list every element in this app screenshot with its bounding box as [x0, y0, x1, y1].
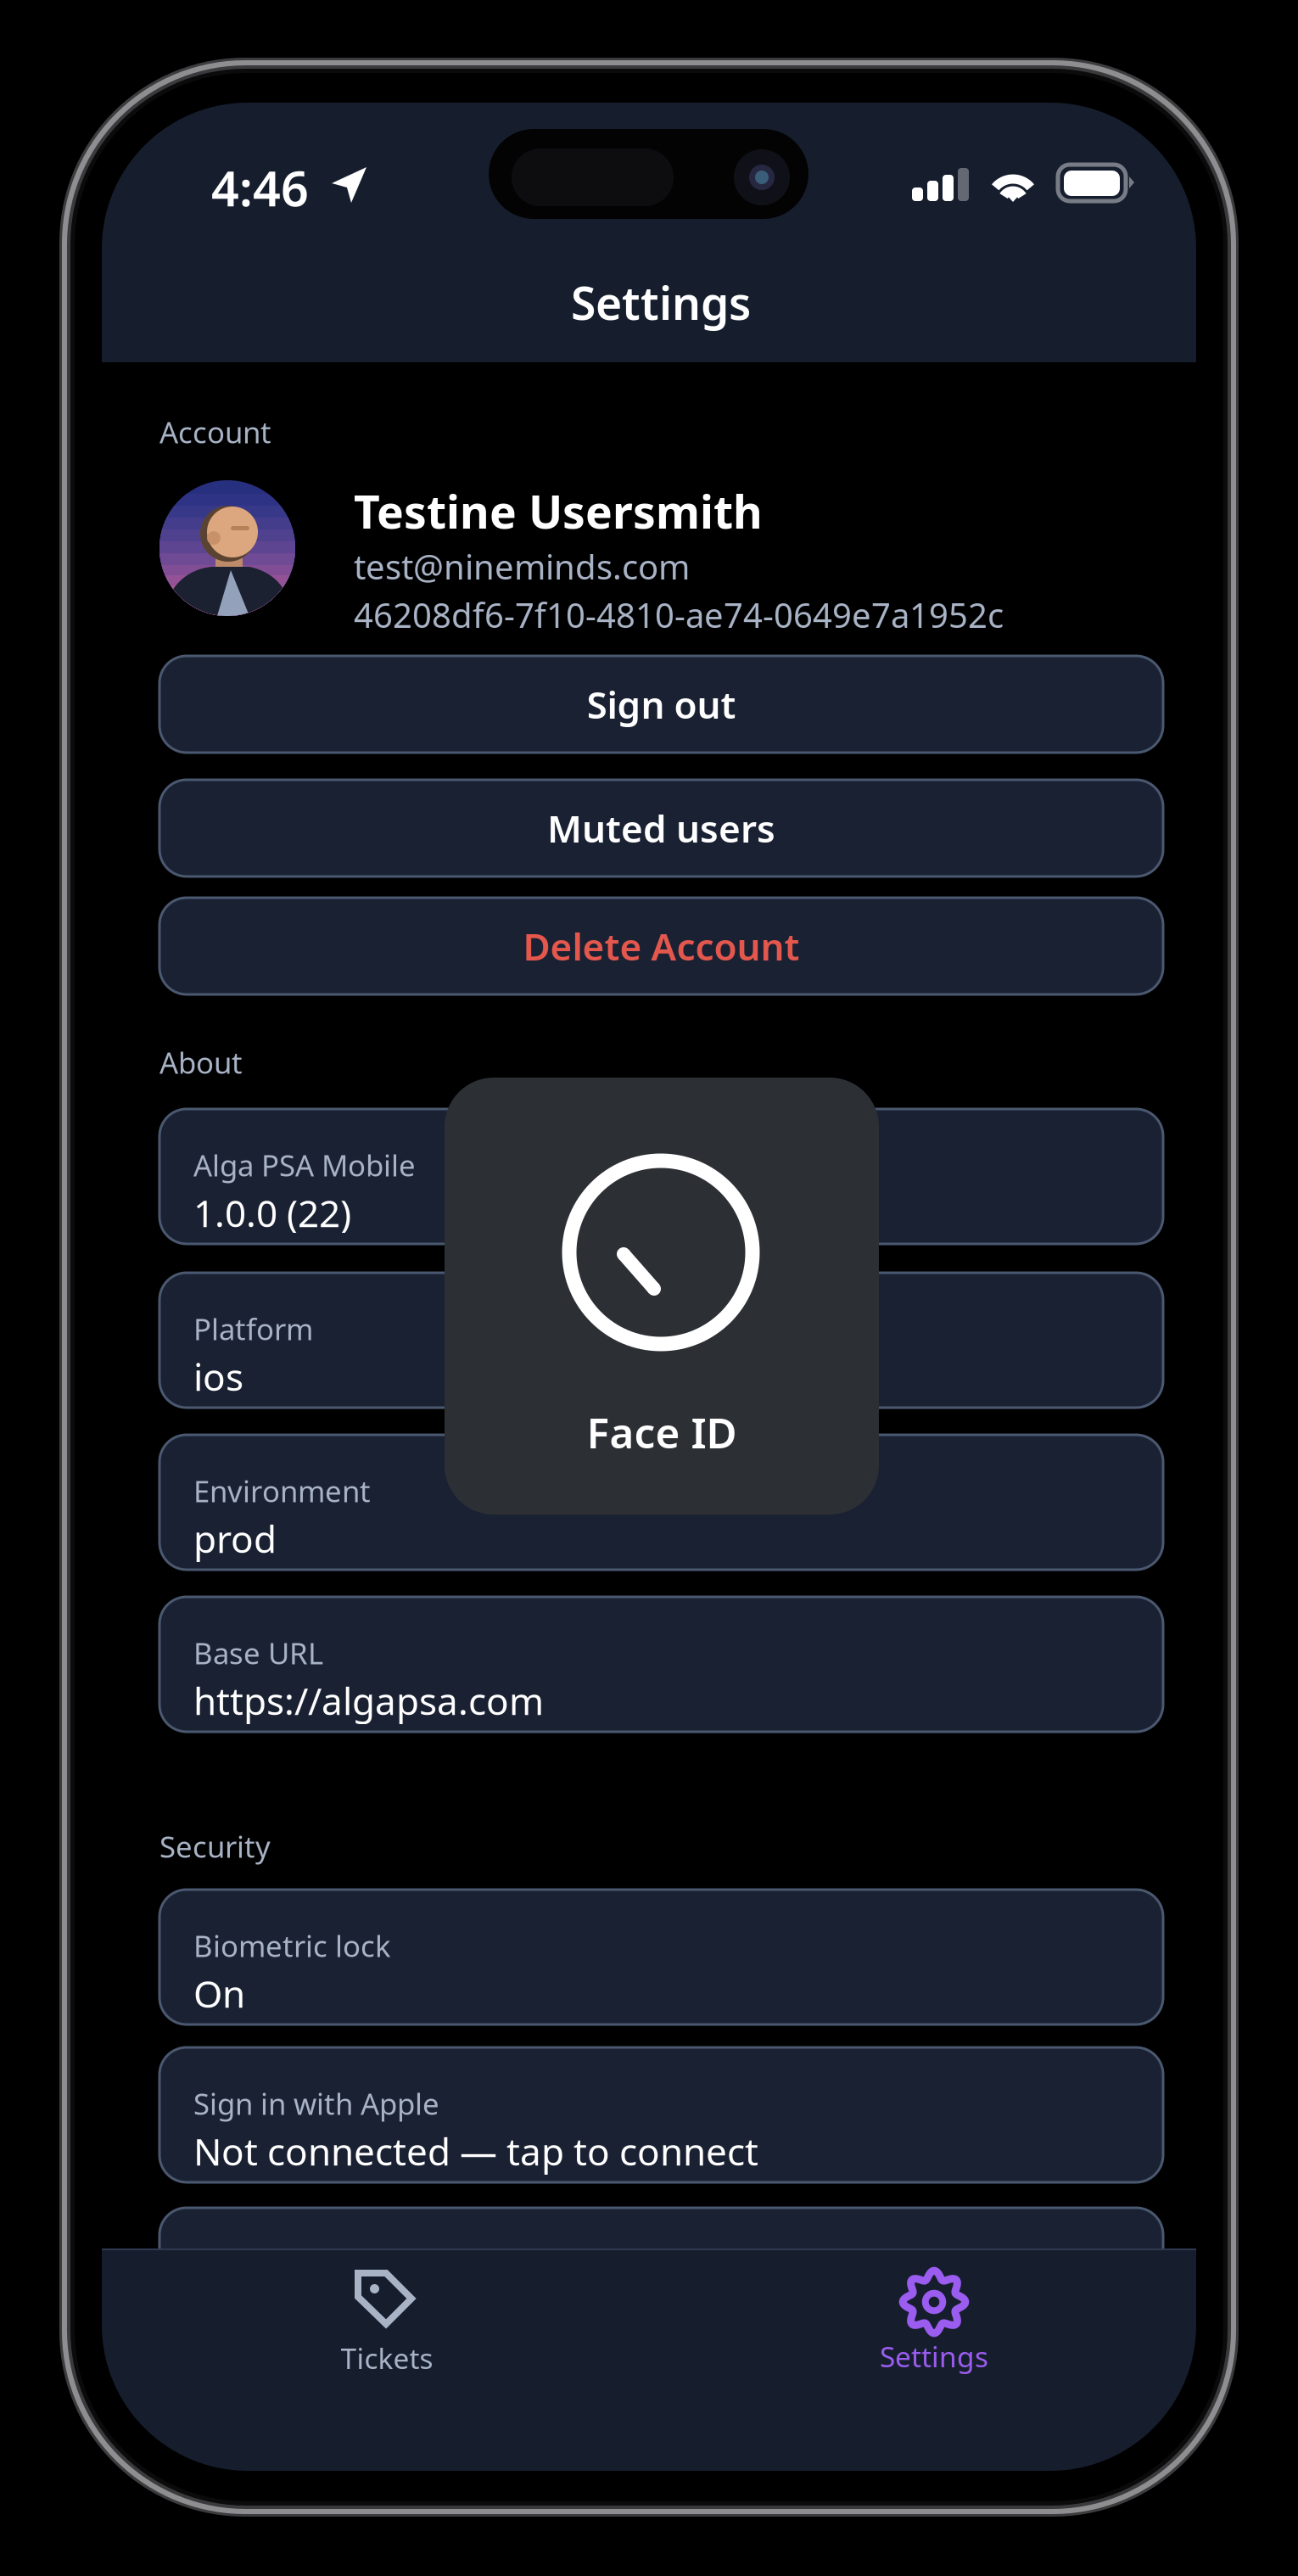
staticText: Face ID	[587, 1404, 737, 1460]
button[interactable]: Biometric lock	[159, 1890, 1163, 2024]
staticText: Tickets	[341, 2339, 433, 2377]
staticText: Testine Usersmith	[354, 481, 763, 541]
staticText: 46208df6-7f10-4810-ae74-0649e7a1952c	[354, 592, 1004, 637]
button[interactable]: Tickets	[204, 2248, 569, 2418]
button[interactable]: Sign in with Apple	[159, 2047, 1163, 2182]
staticText: Environment	[193, 1471, 371, 1510]
staticText: About	[159, 1043, 243, 1082]
button[interactable]: Alga PSA Mobile	[159, 1109, 1163, 1244]
staticText: ios	[193, 1352, 243, 1401]
button[interactable]: Settings	[752, 2248, 1116, 2418]
staticText: Sign out	[587, 679, 736, 729]
staticText: Base URL	[193, 1633, 323, 1672]
staticText: Platform	[193, 1309, 313, 1348]
staticText: Alga PSA Mobile	[193, 1145, 416, 1184]
staticText: https://algapsa.com	[193, 1676, 544, 1725]
staticText: 4:46	[211, 155, 309, 220]
staticText: Sign in with Apple	[193, 2084, 439, 2123]
staticText: Security	[159, 1827, 271, 1866]
staticText: Settings	[880, 2338, 988, 2375]
button[interactable]: Environment	[159, 1435, 1163, 1570]
staticText: Biometric lock	[193, 1926, 391, 1965]
button[interactable]: Muted users	[159, 780, 1163, 876]
staticText: prod	[193, 1514, 277, 1563]
button[interactable]: Platform	[159, 1273, 1163, 1408]
staticText: Settings	[571, 272, 751, 332]
staticText: test@nineminds.com	[354, 544, 690, 589]
button[interactable]: Delete Account	[159, 898, 1163, 994]
staticText: Not connected — tap to connect	[193, 2126, 758, 2176]
staticText: 1.0.0 (22)	[193, 1188, 351, 1237]
staticText: Delete Account	[523, 921, 800, 971]
staticText: Account	[159, 412, 271, 451]
button[interactable]: Base URL	[159, 1597, 1163, 1732]
button[interactable]: Sign out	[159, 656, 1163, 753]
staticText: Muted users	[547, 803, 775, 853]
staticText: On	[193, 1968, 245, 2018]
